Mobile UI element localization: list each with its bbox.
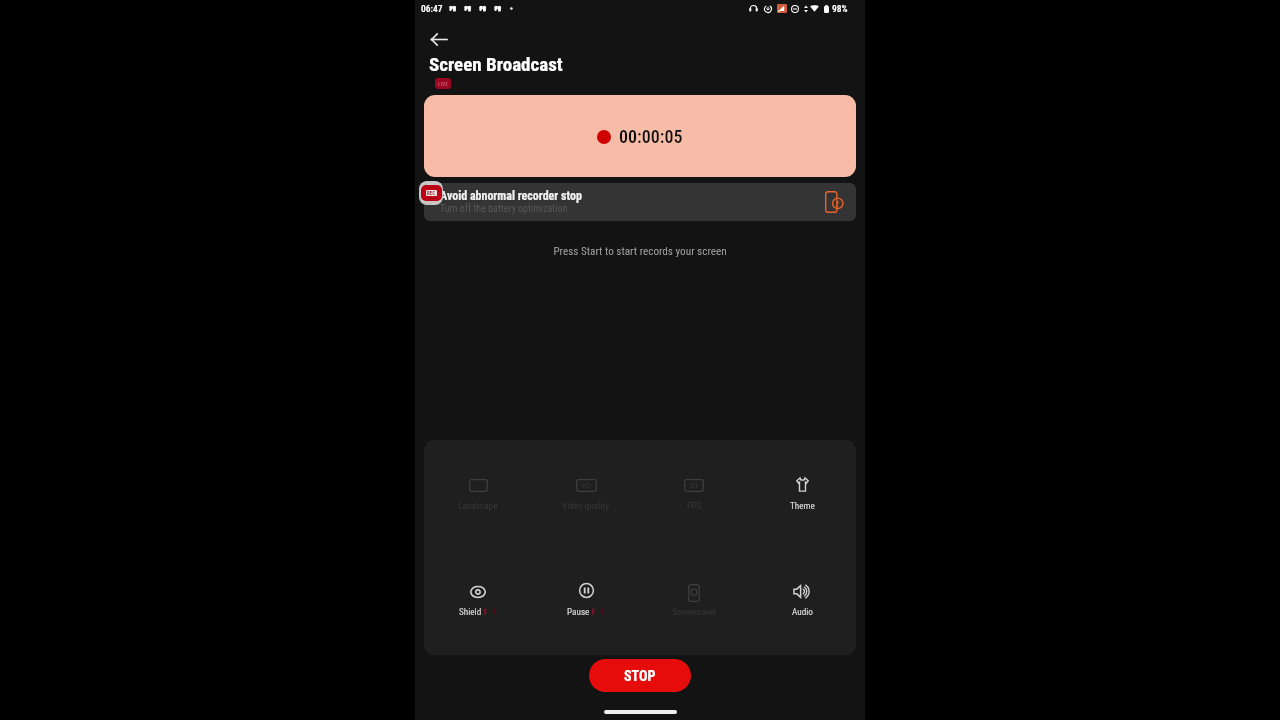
button[interactable]: STOP xyxy=(589,659,691,692)
button[interactable]: Audio xyxy=(748,574,856,626)
button[interactable]: Screensaver xyxy=(640,574,748,626)
staticText: Shield xyxy=(459,606,482,617)
staticText: Landscape xyxy=(458,500,498,511)
staticText: Turn off the battery optimization xyxy=(440,203,568,215)
button[interactable]: 24 xyxy=(640,468,748,520)
staticText: STOP xyxy=(624,668,656,684)
staticText: Avoid abnormal recorder stop xyxy=(440,189,582,203)
staticText: 06:47 xyxy=(421,3,443,14)
button[interactable]: Avoid abnormal recorder stop xyxy=(424,183,856,221)
other: Controls xyxy=(424,440,856,655)
staticText: Press Start to start records your screen xyxy=(415,245,865,258)
button[interactable]: Theme xyxy=(748,468,856,520)
button[interactable]: HD xyxy=(532,468,640,520)
staticText: 24 xyxy=(690,481,698,490)
staticText: Video quality xyxy=(562,500,610,511)
button[interactable]: Record badge xyxy=(435,78,451,89)
staticText: LIVE xyxy=(438,81,448,87)
staticText: HD xyxy=(582,481,591,490)
button[interactable]: 00:00:05 xyxy=(424,95,856,177)
button[interactable]: Landscape xyxy=(424,468,532,520)
staticText: REC xyxy=(427,190,436,196)
staticText: Theme xyxy=(790,500,815,511)
staticText: Pause xyxy=(567,606,590,617)
staticText: FPS xyxy=(687,500,702,511)
other: Battery optimization warning xyxy=(825,191,843,213)
staticText: Screen Broadcast xyxy=(429,53,563,75)
button[interactable]: Floating recorder xyxy=(421,185,442,201)
button[interactable]: Shield xyxy=(424,574,532,626)
button[interactable]: Back xyxy=(431,31,461,47)
staticText: Audio xyxy=(792,606,813,617)
staticText: 00:00:05 xyxy=(619,126,683,147)
staticText: Screensaver xyxy=(672,606,717,617)
staticText: 98% xyxy=(832,3,848,14)
button[interactable]: Pause xyxy=(532,574,640,626)
